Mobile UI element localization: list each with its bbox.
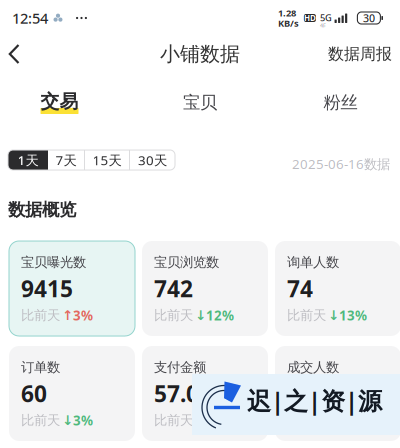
staticText: 742	[154, 273, 193, 303]
button[interactable]: 成交人数	[275, 346, 400, 441]
staticText: 12%	[206, 306, 234, 324]
staticText: ↓	[328, 308, 339, 323]
button[interactable]: 订单数	[9, 346, 135, 441]
staticText: ↓	[62, 413, 73, 428]
staticText: 60	[21, 378, 47, 408]
staticText: 比前天	[154, 412, 193, 428]
staticText: 数据周报	[328, 44, 392, 64]
button[interactable]: 宝贝	[119, 94, 281, 118]
button[interactable]: 宝贝浏览数	[142, 241, 268, 336]
staticText: 3%	[73, 411, 93, 429]
staticText: 8%	[206, 411, 226, 429]
staticText: 53	[287, 378, 313, 408]
staticText: 宝贝浏览数	[154, 254, 219, 270]
staticText: 74	[287, 273, 313, 303]
button[interactable]: 交易	[0, 94, 119, 118]
button[interactable]: 粉丝	[281, 94, 400, 118]
staticText: ↑	[62, 308, 73, 323]
staticText: 比前天	[154, 307, 193, 323]
staticText: ↓	[195, 308, 206, 323]
staticText: 5G	[320, 11, 332, 24]
staticText: 粉丝	[323, 92, 357, 113]
staticText: 30	[363, 11, 375, 25]
staticText: KB/s	[278, 17, 299, 29]
staticText: 小铺数据	[160, 42, 240, 66]
button[interactable]: 询单人数	[275, 241, 400, 336]
staticText: 7天	[55, 151, 76, 169]
staticText: 比前天	[21, 307, 60, 323]
staticText: ↓	[195, 413, 206, 428]
staticText: 询单人数	[287, 254, 339, 270]
button[interactable]: 宝贝曝光数	[9, 241, 135, 336]
button[interactable]: 15天	[85, 150, 129, 170]
staticText: 12:54	[12, 8, 48, 28]
staticText: 订单数	[21, 359, 60, 375]
staticText: 2025-06-16数据	[292, 155, 390, 173]
staticText: HD	[304, 13, 316, 23]
staticText: 57.0	[154, 378, 199, 408]
staticText: 成交人数	[287, 359, 339, 375]
button[interactable]: 支付金额	[142, 346, 268, 441]
staticText: 交易	[40, 90, 78, 113]
staticText: 5%	[339, 411, 359, 429]
staticText: 13%	[339, 306, 367, 324]
staticText: 比前天	[287, 412, 326, 428]
staticText: 1天	[17, 151, 38, 169]
staticText: 1.28	[278, 7, 296, 19]
staticText: 支付金额	[154, 359, 206, 375]
staticText: 数据概览	[8, 199, 76, 220]
staticText: 30天	[138, 151, 167, 169]
staticText: 9415	[21, 273, 73, 303]
staticText: 15天	[92, 151, 121, 169]
staticText: 4F	[320, 22, 326, 29]
button[interactable]: 1天	[8, 150, 48, 170]
button[interactable]: 7天	[48, 150, 84, 170]
staticText: 3%	[73, 306, 93, 324]
staticText: 宝贝曝光数	[21, 254, 86, 270]
staticText: 迟|之|资|源	[247, 385, 382, 416]
staticText: 宝贝	[183, 92, 217, 113]
staticText: 比前天	[21, 412, 60, 428]
button[interactable]: 数据周报	[328, 37, 392, 71]
button[interactable]: 30天	[130, 150, 175, 170]
staticText: 比前天	[287, 307, 326, 323]
button[interactable]: Back	[8, 37, 42, 71]
